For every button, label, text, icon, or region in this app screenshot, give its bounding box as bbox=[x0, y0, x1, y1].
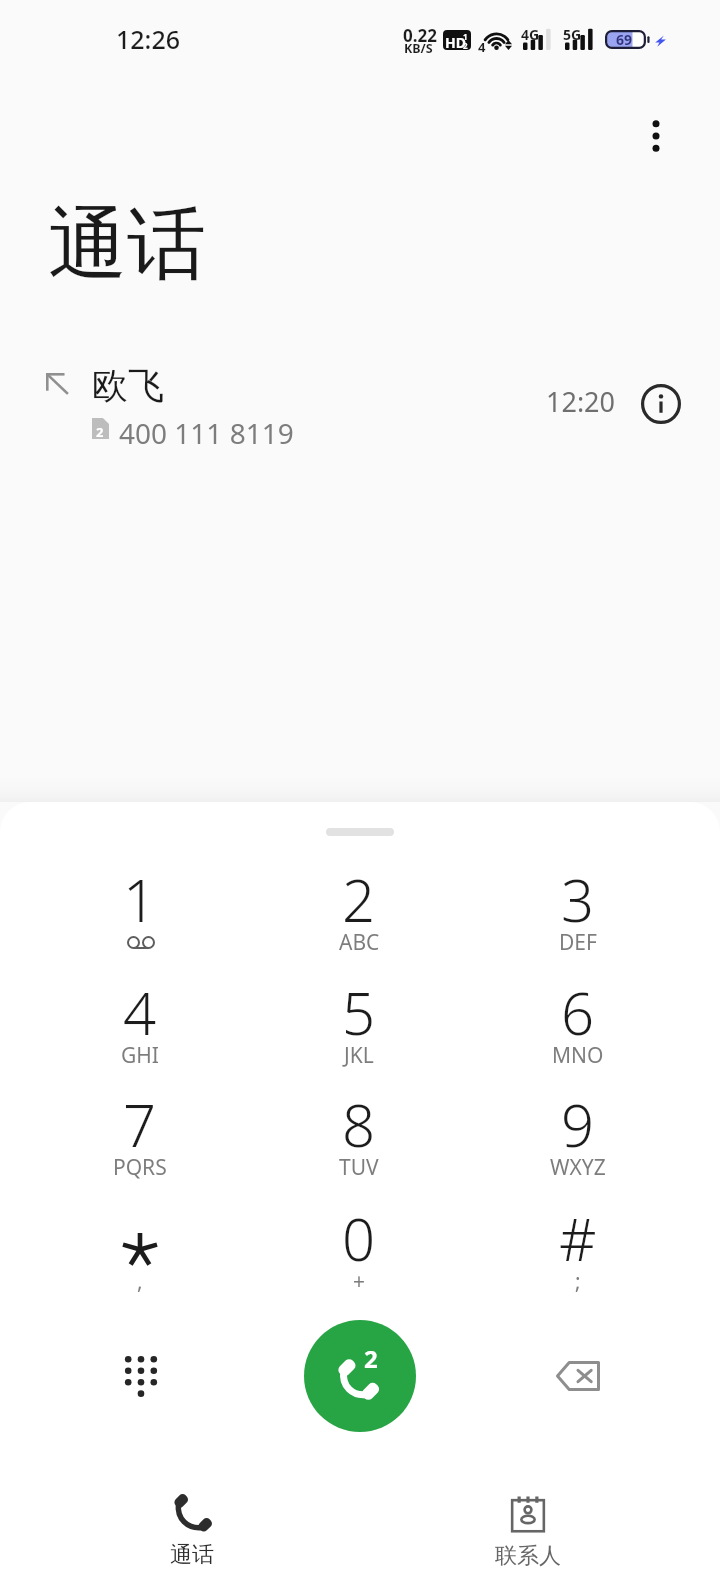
staticText: HD bbox=[445, 33, 466, 50]
staticText: 联系人 bbox=[495, 1542, 561, 1570]
staticText: 7 bbox=[123, 1085, 157, 1164]
button[interactable]: 2 bbox=[286, 845, 432, 957]
staticText: DEF bbox=[559, 928, 597, 957]
staticText: 2 bbox=[463, 40, 468, 50]
staticText: 6 bbox=[561, 973, 595, 1052]
button[interactable]: 7 bbox=[67, 1070, 213, 1182]
button[interactable]: 欧飞 bbox=[0, 348, 720, 460]
button[interactable]: 9 bbox=[505, 1070, 651, 1182]
button[interactable]: Delete bbox=[538, 1336, 618, 1416]
button[interactable]: More options bbox=[628, 108, 684, 164]
staticText: WXYZ bbox=[550, 1153, 606, 1182]
staticText: 69 bbox=[616, 30, 633, 49]
button[interactable]: 1 bbox=[67, 845, 213, 957]
button[interactable]: 联系人 bbox=[448, 1460, 608, 1584]
button[interactable]: 0 bbox=[286, 1184, 432, 1296]
button[interactable]: 6 bbox=[505, 958, 651, 1070]
staticText: 12:26 bbox=[116, 22, 181, 56]
staticText: KB/S bbox=[404, 40, 433, 57]
staticText: MNO bbox=[552, 1041, 604, 1070]
staticText: 4 bbox=[123, 973, 157, 1052]
staticText: 3 bbox=[561, 860, 595, 939]
staticText: 4 bbox=[478, 38, 486, 56]
button[interactable]: 3 bbox=[505, 845, 651, 957]
staticText: 0 bbox=[342, 1199, 376, 1278]
staticText: 通话 bbox=[48, 195, 206, 295]
button[interactable]: 通话 bbox=[112, 1460, 272, 1584]
staticText: 欧飞 bbox=[92, 363, 164, 408]
staticText: 1 bbox=[463, 31, 468, 42]
staticText: 4G bbox=[521, 25, 540, 44]
staticText: 0.22 bbox=[403, 24, 437, 47]
staticText: 12:20 bbox=[546, 383, 616, 420]
staticText: ; bbox=[575, 1267, 581, 1296]
staticText: GHI bbox=[121, 1041, 159, 1070]
staticText: 2 bbox=[96, 423, 104, 441]
staticText: + bbox=[353, 1267, 366, 1296]
staticText: 9 bbox=[561, 1085, 595, 1164]
button[interactable]: , bbox=[67, 1184, 213, 1296]
button[interactable]: 4 bbox=[67, 958, 213, 1070]
staticText: PQRS bbox=[113, 1153, 167, 1182]
staticText: 5 bbox=[342, 973, 376, 1052]
button[interactable]: # bbox=[505, 1184, 651, 1296]
staticText: 2 bbox=[364, 1342, 378, 1375]
button[interactable]: 5 bbox=[286, 958, 432, 1070]
staticText: 1 bbox=[123, 860, 157, 939]
staticText: 通话 bbox=[170, 1541, 214, 1569]
button[interactable]: Call bbox=[304, 1320, 416, 1432]
button[interactable]: Call details bbox=[632, 375, 689, 432]
staticText: 400 111 8119 bbox=[119, 414, 294, 452]
staticText: 5G bbox=[563, 25, 582, 44]
staticText: JKL bbox=[344, 1041, 374, 1070]
staticText: 8 bbox=[342, 1085, 376, 1164]
staticText: ABC bbox=[339, 928, 380, 957]
staticText: , bbox=[137, 1267, 143, 1296]
button[interactable]: Keypad bbox=[100, 1337, 180, 1417]
button[interactable]: 8 bbox=[286, 1070, 432, 1182]
staticText: 2 bbox=[342, 860, 376, 939]
staticText: TUV bbox=[339, 1153, 379, 1182]
staticText: # bbox=[559, 1199, 597, 1278]
